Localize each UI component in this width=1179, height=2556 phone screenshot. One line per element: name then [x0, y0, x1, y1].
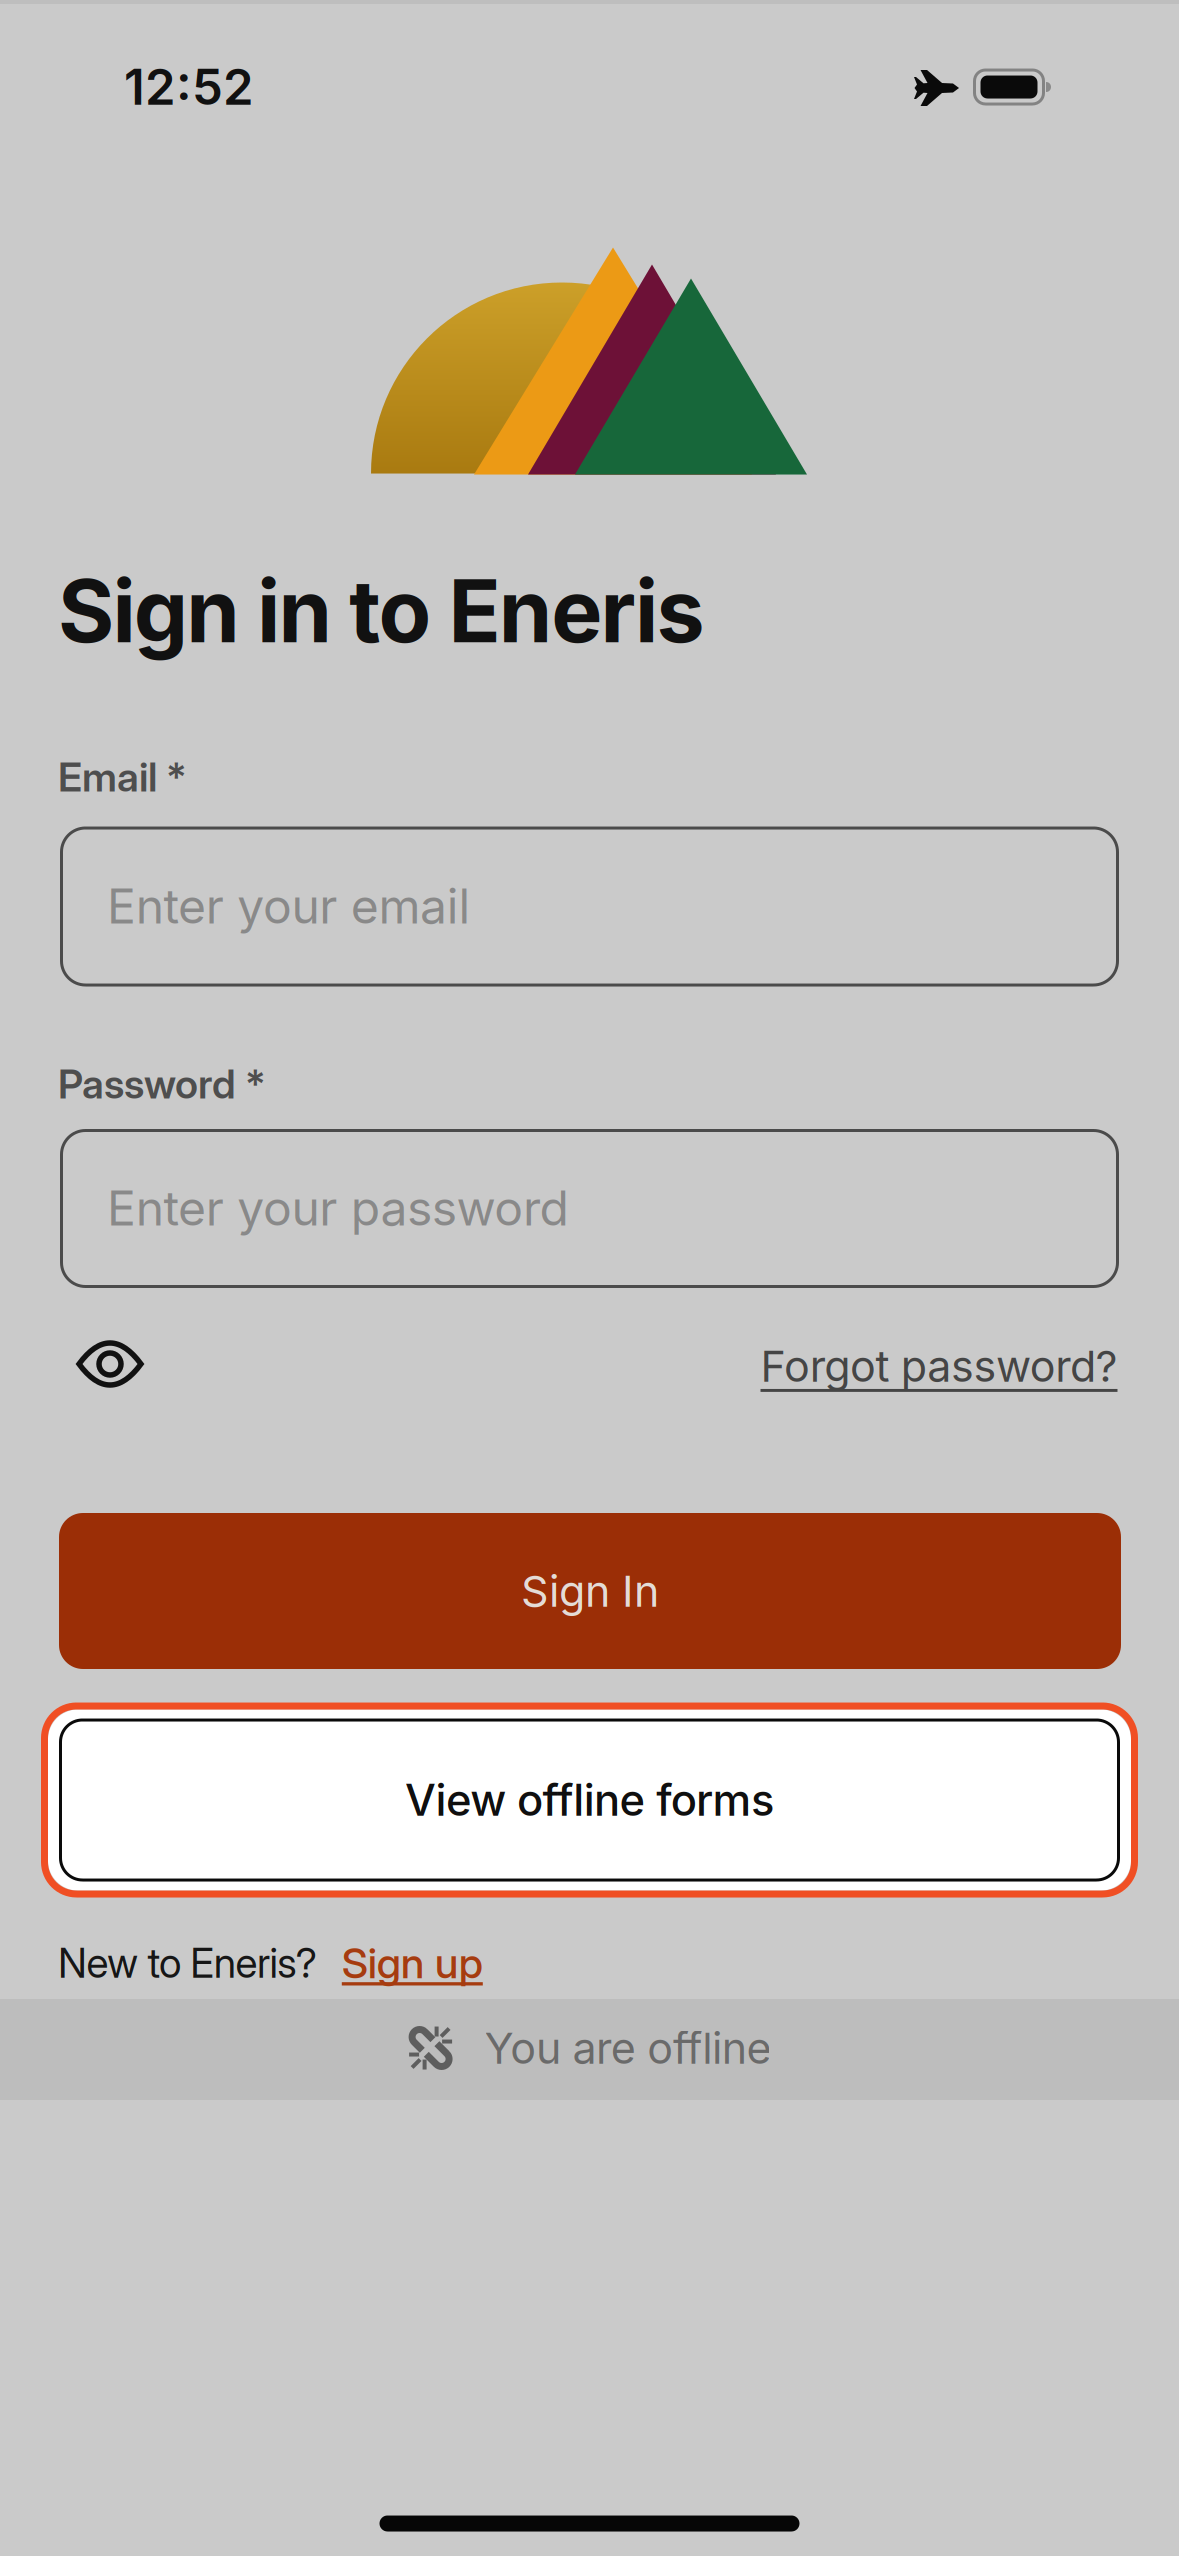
staticText: Forgot password?: [760, 1340, 1117, 1392]
staticText: Password *: [58, 1060, 266, 1108]
staticText: View offline forms: [405, 1774, 774, 1826]
button[interactable]: Forgot password?: [760, 1340, 1117, 1392]
staticText: Sign In: [521, 1565, 659, 1617]
staticText: New to Eneris?: [58, 1938, 317, 1987]
staticText: Enter your email: [107, 877, 470, 935]
button[interactable]: Sign up: [342, 1938, 483, 1988]
button[interactable]: Sign In: [59, 1513, 1121, 1669]
staticText: Sign in to Eneris: [58, 559, 704, 663]
staticText: Enter your password: [107, 1179, 569, 1237]
staticText: Sign up: [342, 1938, 483, 1988]
button[interactable]: Show password: [65, 1329, 155, 1399]
staticText: 12:52: [124, 57, 254, 117]
button[interactable]: View offline forms: [41, 1702, 1138, 1897]
staticText: Email *: [58, 753, 187, 801]
staticText: You are offline: [485, 2022, 771, 2074]
